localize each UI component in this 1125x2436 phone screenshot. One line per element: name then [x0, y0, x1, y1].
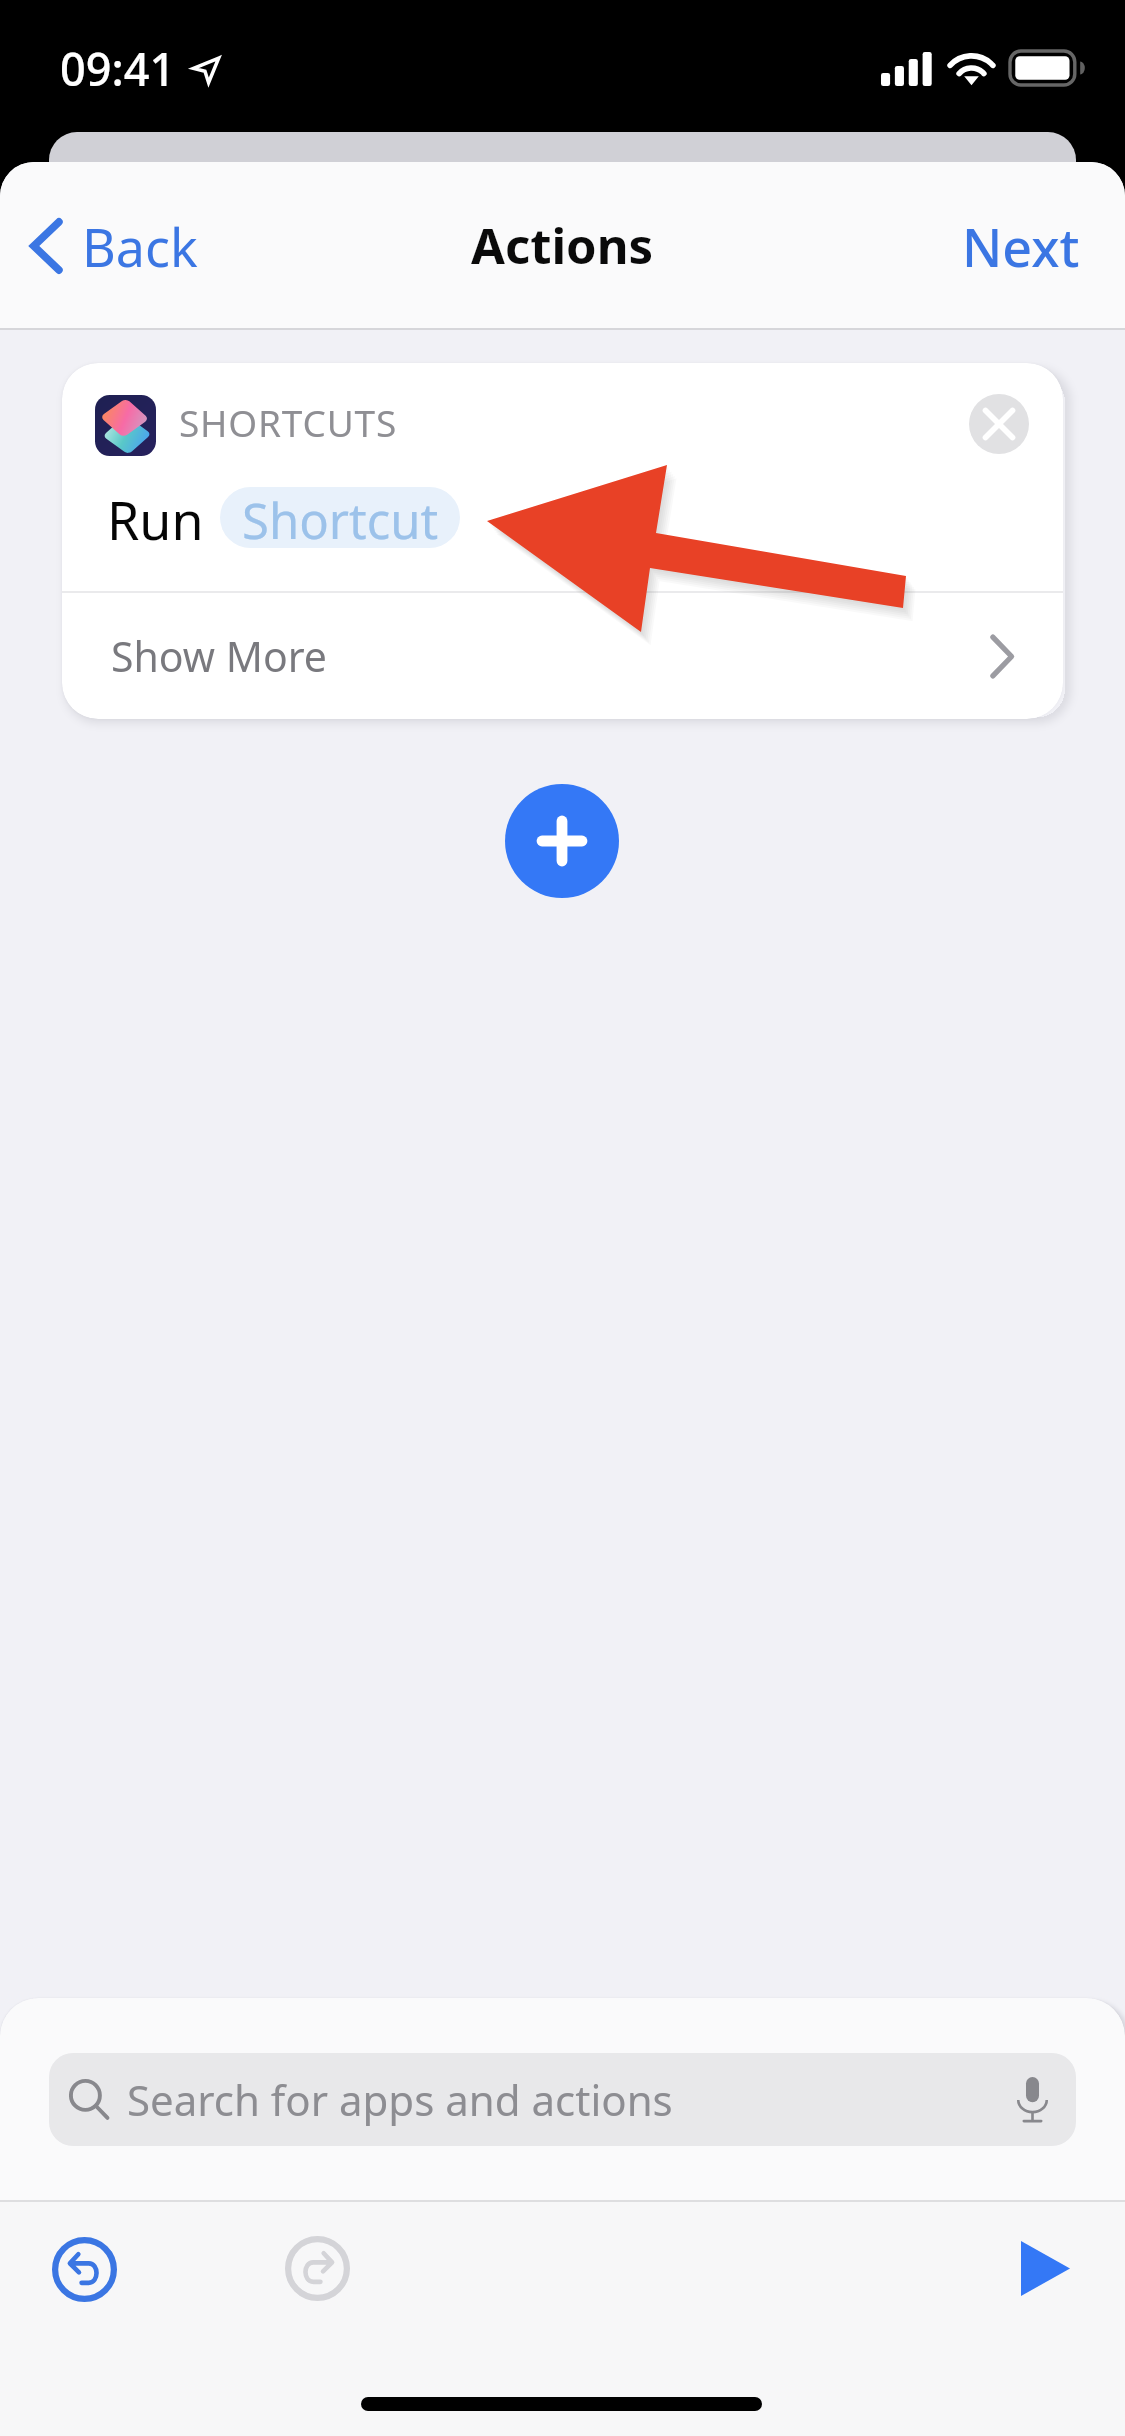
staticText: Show More: [111, 628, 327, 684]
button[interactable]: Back: [9, 188, 220, 304]
staticText: Search for apps and actions: [127, 2071, 673, 2128]
staticText: Run: [107, 484, 204, 555]
staticText: Shortcut: [242, 487, 439, 548]
button[interactable]: Add action: [505, 784, 619, 898]
button[interactable]: Redo: [265, 2216, 370, 2321]
button[interactable]: Remove action: [964, 389, 1034, 459]
staticText: Back: [82, 211, 198, 282]
button[interactable]: Shortcut: [220, 487, 460, 548]
staticText: Next: [962, 211, 1080, 282]
button[interactable]: Run shortcut: [993, 2216, 1098, 2321]
staticText: 09:41: [60, 38, 176, 99]
button[interactable]: Undo: [32, 2217, 137, 2322]
staticText: Actions: [471, 212, 654, 279]
staticText: SHORTCUTS: [179, 397, 397, 447]
button[interactable]: Next: [912, 188, 1125, 304]
button[interactable]: Search for apps and actions: [49, 2053, 1076, 2146]
button[interactable]: Show More: [62, 593, 1063, 719]
